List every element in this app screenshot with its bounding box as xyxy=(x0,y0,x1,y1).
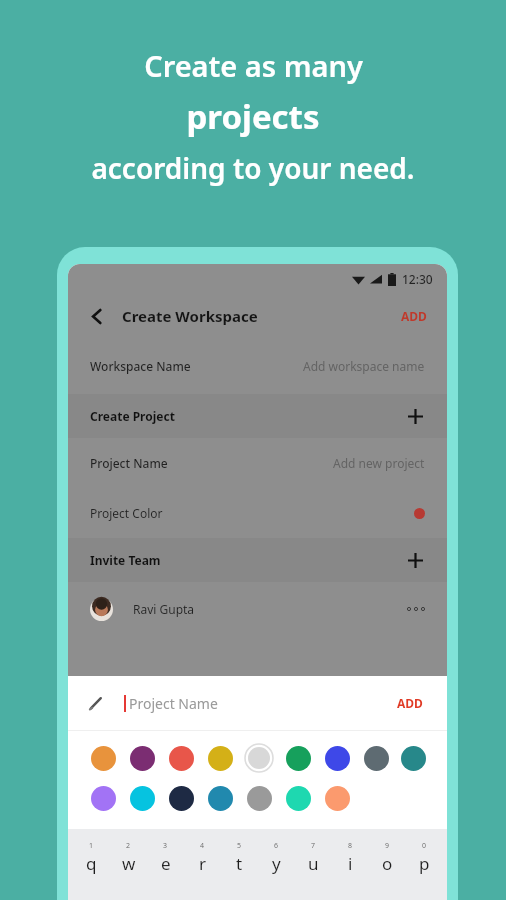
button[interactable] xyxy=(322,743,352,773)
staticText: 3 xyxy=(163,841,168,851)
staticText: 5 xyxy=(237,841,242,851)
staticText: 7 xyxy=(311,841,316,851)
button[interactable] xyxy=(244,783,274,813)
button[interactable] xyxy=(244,743,274,773)
button[interactable]: 9 xyxy=(369,841,406,875)
staticText: 1 xyxy=(89,841,94,851)
button[interactable]: 0 xyxy=(406,841,443,875)
staticText: y xyxy=(272,852,281,875)
staticText: i xyxy=(348,852,353,875)
button[interactable] xyxy=(166,743,196,773)
staticText: ADD xyxy=(397,695,423,711)
staticText: Add new project xyxy=(333,455,425,471)
staticText: Project Name xyxy=(90,455,168,471)
staticText: r xyxy=(199,852,207,875)
staticText: Project Color xyxy=(90,505,163,521)
button[interactable]: Project Color xyxy=(68,488,447,538)
staticText: Ravi Gupta xyxy=(133,601,195,617)
staticText: q xyxy=(86,852,97,875)
button[interactable]: Edit xyxy=(68,676,447,730)
other: More options xyxy=(407,607,425,611)
button[interactable] xyxy=(88,783,118,813)
staticText: ADD xyxy=(401,308,427,324)
staticText: Create Workspace xyxy=(122,306,258,326)
staticText: o xyxy=(382,852,393,875)
button[interactable]: Back xyxy=(84,303,110,329)
staticText: p xyxy=(419,852,430,875)
staticText: 9 xyxy=(385,841,390,851)
button[interactable]: 2 xyxy=(110,841,147,875)
other: Edit xyxy=(88,695,104,711)
staticText: 4 xyxy=(200,841,205,851)
button[interactable] xyxy=(127,783,157,813)
button[interactable]: ADD xyxy=(397,304,431,328)
button[interactable]: 7 xyxy=(295,841,332,875)
staticText: 12:30 xyxy=(402,271,433,287)
button[interactable]: 5 xyxy=(221,841,258,875)
other: Add xyxy=(405,406,425,426)
button[interactable] xyxy=(283,783,313,813)
button[interactable]: 4 xyxy=(184,841,221,875)
button[interactable] xyxy=(166,783,196,813)
button[interactable]: Create Project xyxy=(68,394,447,438)
other: Add xyxy=(405,550,425,570)
button[interactable] xyxy=(361,743,391,773)
button[interactable]: ADD xyxy=(393,691,427,715)
button[interactable] xyxy=(283,743,313,773)
staticText: e xyxy=(161,852,171,875)
button[interactable] xyxy=(400,743,427,773)
button[interactable] xyxy=(322,783,352,813)
staticText: according to your need. xyxy=(91,149,415,187)
staticText: projects xyxy=(186,94,320,139)
staticText: 6 xyxy=(274,841,279,851)
button[interactable]: Project Name xyxy=(68,438,447,488)
staticText: Project Name xyxy=(129,694,218,713)
staticText: Workspace Name xyxy=(90,358,191,374)
staticText: Create as many xyxy=(144,46,363,85)
staticText: Add workspace name xyxy=(303,358,425,374)
button[interactable]: 6 xyxy=(258,841,295,875)
button[interactable]: 8 xyxy=(332,841,369,875)
button[interactable]: 1 xyxy=(72,841,110,875)
button[interactable]: Ravi Gupta xyxy=(68,582,447,636)
button[interactable] xyxy=(88,743,118,773)
staticText: 2 xyxy=(126,841,131,851)
staticText: 8 xyxy=(348,841,353,851)
button[interactable]: 3 xyxy=(147,841,184,875)
staticText: Create Project xyxy=(90,408,175,424)
button[interactable] xyxy=(205,783,235,813)
staticText: t xyxy=(236,852,243,875)
button[interactable] xyxy=(205,743,235,773)
staticText: w xyxy=(122,852,136,875)
button[interactable]: Workspace Name xyxy=(68,338,447,394)
staticText: u xyxy=(308,852,319,875)
button[interactable] xyxy=(127,743,157,773)
staticText: 0 xyxy=(422,841,427,851)
button[interactable]: Invite Team xyxy=(68,538,447,582)
staticText: Invite Team xyxy=(90,552,161,568)
